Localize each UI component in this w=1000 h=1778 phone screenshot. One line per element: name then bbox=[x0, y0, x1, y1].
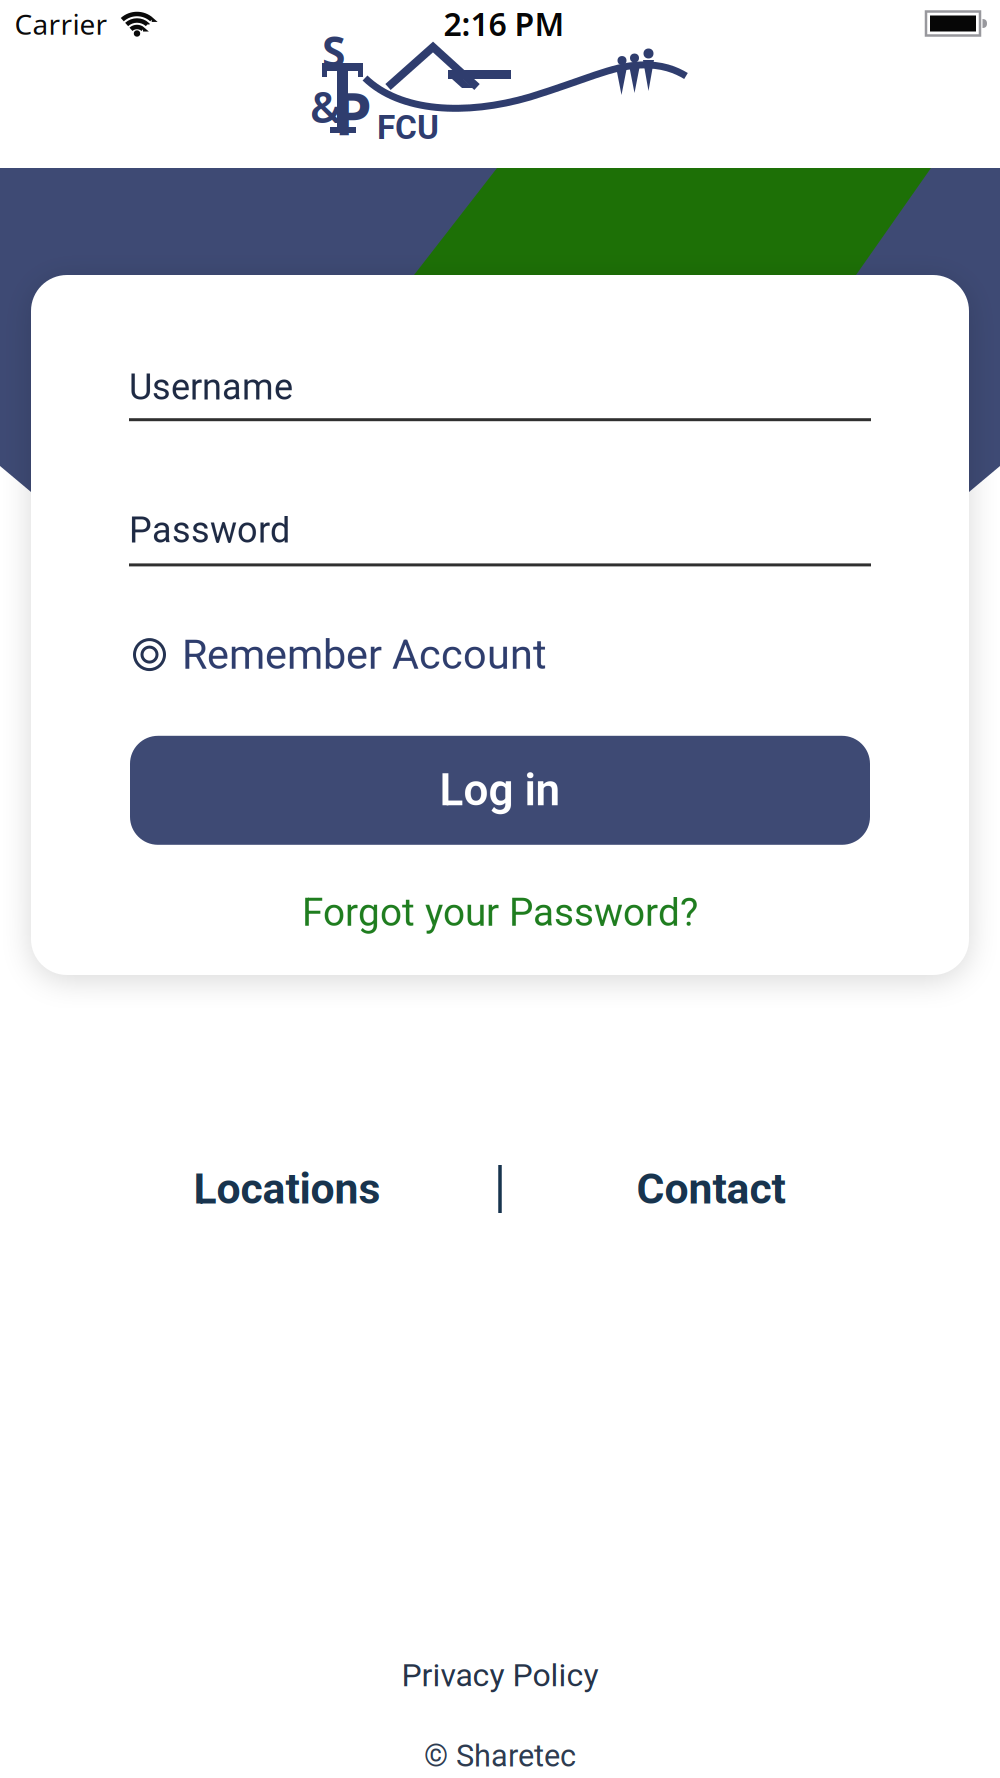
staticText: Carrier bbox=[14, 5, 107, 43]
button[interactable]: Contact bbox=[636, 1164, 785, 1214]
button[interactable]: Locations bbox=[193, 1164, 380, 1214]
staticText: Log in bbox=[439, 764, 560, 816]
staticText: & bbox=[310, 77, 342, 135]
staticText: © Sharetec bbox=[424, 1738, 576, 1774]
staticText: Password bbox=[129, 509, 290, 551]
staticText: 2:16 PM bbox=[443, 2, 564, 45]
button[interactable]: Username bbox=[129, 366, 871, 421]
staticText: Locations bbox=[193, 1164, 380, 1214]
button[interactable]: Password bbox=[129, 509, 871, 566]
staticText: Privacy Policy bbox=[401, 1657, 598, 1694]
staticText: S bbox=[322, 22, 346, 80]
staticText: Forgot your Password? bbox=[302, 890, 698, 935]
staticText: Contact bbox=[636, 1164, 785, 1214]
staticText: P bbox=[334, 71, 371, 153]
staticText: Username bbox=[129, 366, 293, 408]
staticText: Remember Account bbox=[182, 630, 547, 679]
button[interactable]: Forgot your Password? bbox=[302, 890, 698, 935]
button[interactable]: Privacy Policy bbox=[401, 1657, 598, 1694]
staticText: FCU bbox=[377, 108, 439, 147]
button[interactable]: Remember Account bbox=[133, 630, 547, 679]
button[interactable]: Log in bbox=[130, 736, 870, 845]
